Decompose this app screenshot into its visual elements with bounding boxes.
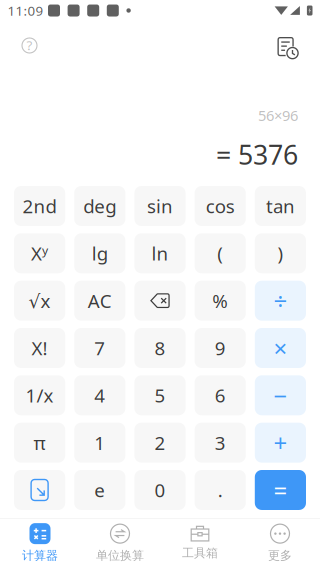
staticText: ÷ — [273, 285, 287, 317]
button[interactable]: 6 — [195, 375, 246, 415]
button[interactable]: 4 — [74, 375, 125, 415]
staticText: ? — [26, 36, 32, 54]
button[interactable]: . — [195, 470, 246, 510]
button[interactable]: 3 — [195, 423, 246, 463]
staticText: + — [273, 427, 287, 459]
staticText: 单位换算 — [96, 548, 144, 563]
staticText: deg — [83, 194, 116, 218]
button[interactable] — [14, 470, 65, 510]
staticText: AC — [88, 288, 112, 313]
staticText: ) — [277, 241, 283, 266]
staticText: 工具箱 — [182, 546, 218, 560]
staticText: X! — [32, 336, 48, 360]
button[interactable]: deg — [74, 186, 125, 226]
button[interactable]: × — [255, 328, 306, 368]
button[interactable]: ln — [134, 233, 186, 273]
staticText: − — [273, 379, 287, 411]
staticText: 4 — [94, 383, 105, 408]
staticText: 更多 — [268, 548, 292, 563]
staticText: tan — [266, 194, 295, 218]
staticText: 1 — [94, 430, 105, 455]
staticText: 5 — [154, 383, 165, 408]
button[interactable] — [134, 281, 186, 321]
button[interactable]: ( — [195, 233, 246, 273]
staticText: 7 — [94, 336, 105, 360]
button[interactable]: √x — [14, 281, 65, 321]
button[interactable]: Help — [12, 21, 46, 61]
staticText: lg — [92, 241, 108, 266]
staticText: 2nd — [23, 194, 57, 218]
button[interactable]: 7 — [74, 328, 125, 368]
staticText: 1/x — [26, 383, 54, 408]
button[interactable]: X! — [14, 328, 65, 368]
staticText: 2 — [154, 430, 165, 455]
staticText: 9 — [215, 336, 226, 360]
button[interactable]: 单位换算 — [80, 518, 160, 568]
button[interactable]: 9 — [195, 328, 246, 368]
button[interactable]: 2 — [134, 423, 186, 463]
staticText: e — [94, 478, 105, 502]
staticText: 计算器 — [22, 548, 58, 563]
button[interactable]: 1 — [74, 423, 125, 463]
button[interactable]: 8 — [134, 328, 186, 368]
staticText: sin — [147, 194, 173, 218]
button[interactable]: 5 — [134, 375, 186, 415]
staticText: ln — [151, 241, 168, 266]
button[interactable]: lg — [74, 233, 125, 273]
staticText: . — [218, 478, 223, 502]
staticText: 6 — [215, 383, 226, 408]
staticText: Xʸ — [31, 241, 48, 266]
button[interactable]: e — [74, 470, 125, 510]
staticText: ( — [217, 241, 223, 266]
staticText: % — [212, 288, 228, 313]
button[interactable]: 计算器 — [0, 518, 80, 568]
button[interactable]: 1/x — [14, 375, 65, 415]
button[interactable]: % — [195, 281, 246, 321]
button[interactable]: Xʸ — [14, 233, 65, 273]
staticText: 11:09 — [7, 2, 43, 19]
staticText: 0 — [154, 478, 165, 502]
staticText: = — [273, 474, 287, 506]
staticText: 56×96 — [258, 105, 298, 125]
staticText: √x — [29, 288, 51, 313]
button[interactable]: π — [14, 423, 65, 463]
staticText: 8 — [154, 336, 165, 360]
staticText: 3 — [215, 430, 226, 455]
button[interactable]: History — [271, 21, 305, 61]
button[interactable]: cos — [195, 186, 246, 226]
button[interactable]: ÷ — [255, 281, 306, 321]
staticText: cos — [206, 194, 235, 218]
button[interactable]: tan — [255, 186, 306, 226]
button[interactable]: ) — [255, 233, 306, 273]
button[interactable]: 工具箱 — [160, 518, 240, 568]
button[interactable]: 更多 — [240, 518, 320, 568]
staticText: = 5376 — [216, 137, 298, 172]
button[interactable]: AC — [74, 281, 125, 321]
button[interactable]: − — [255, 375, 306, 415]
button[interactable]: = — [255, 470, 306, 510]
button[interactable]: 0 — [134, 470, 186, 510]
button[interactable]: + — [255, 423, 306, 463]
staticText: × — [273, 332, 287, 364]
staticText: π — [34, 430, 46, 455]
button[interactable]: sin — [134, 186, 186, 226]
button[interactable]: 2nd — [14, 186, 65, 226]
